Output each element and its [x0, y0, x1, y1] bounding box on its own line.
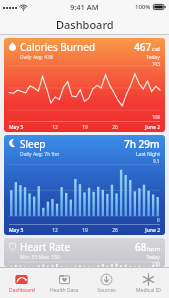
staticText: 743 [152, 61, 160, 67]
staticText: May 5 [9, 124, 40, 131]
staticText: 7h 29m [124, 137, 160, 151]
staticText: Daily Avg: 7h 9m [20, 151, 60, 158]
staticText: Min: 53 Max: 130 [20, 254, 60, 261]
staticText: cal [152, 45, 160, 53]
button[interactable]: Dashboard [0, 268, 43, 298]
staticText: Dashboard [9, 287, 35, 294]
staticText: Today [146, 54, 160, 61]
staticText: Today [146, 254, 160, 261]
button[interactable]: Medical ID [127, 268, 169, 298]
staticText: Health Data [50, 287, 78, 294]
staticText: 68 [135, 240, 147, 254]
staticText: 19 [70, 124, 100, 131]
staticText: 467 [134, 40, 152, 54]
staticText: 100% [135, 3, 151, 11]
staticText: 130 [152, 261, 160, 267]
button[interactable]: Sleep [4, 135, 165, 235]
staticText: 108 [152, 114, 160, 120]
button[interactable]: Health Data [43, 268, 85, 298]
staticText: May 5 [9, 227, 40, 234]
staticText: 9:41 AM [70, 2, 99, 12]
button[interactable]: Sources [85, 268, 127, 298]
staticText: 19 [70, 227, 100, 234]
staticText: 9.5 [153, 158, 160, 164]
staticText: 0 [157, 217, 160, 223]
staticText: bpm [147, 245, 160, 253]
staticText: 12 [40, 227, 70, 234]
staticText: Dashboard [56, 17, 114, 32]
staticText: June 2 [130, 227, 160, 234]
staticText: Heart Rate [20, 240, 71, 254]
staticText: Daily Avg: 438 [20, 54, 53, 61]
staticText: 12 [40, 124, 70, 131]
staticText: Last Night [136, 151, 160, 158]
staticText: 26 [100, 227, 130, 234]
staticText: Sleep [20, 137, 46, 151]
staticText: June 2 [130, 124, 160, 131]
button[interactable]: Calories Burned [4, 38, 165, 132]
button[interactable]: Heart Rate [4, 238, 165, 267]
staticText: Sources [97, 287, 116, 294]
staticText: Calories Burned [20, 40, 96, 54]
staticText: 26 [100, 124, 130, 131]
staticText: Medical ID [136, 287, 161, 294]
